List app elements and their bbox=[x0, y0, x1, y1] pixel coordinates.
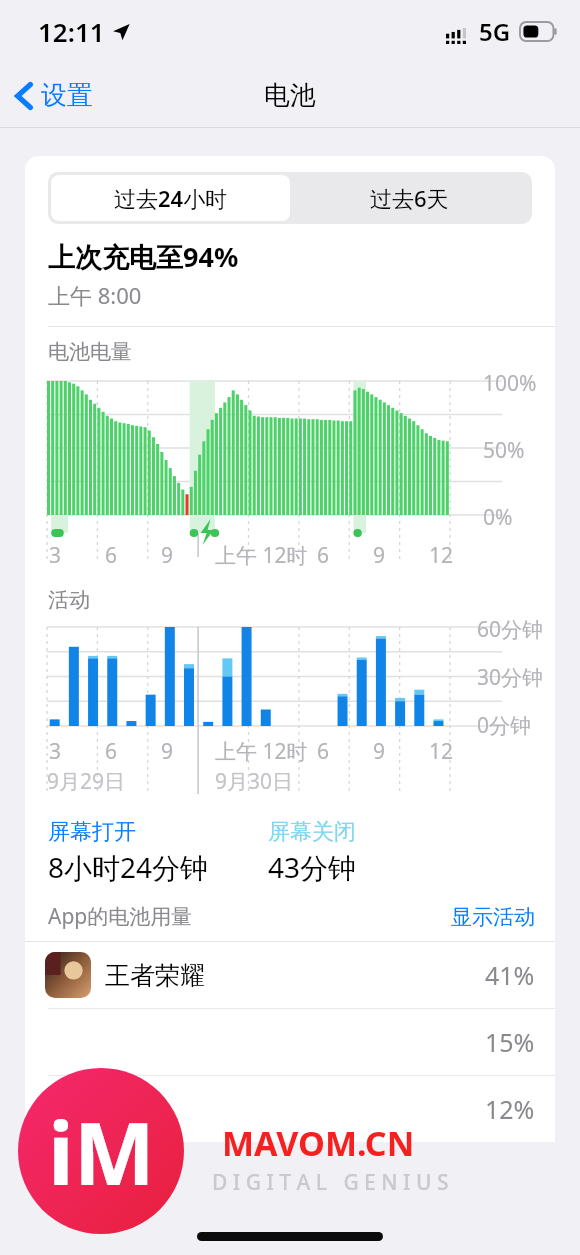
staticText: 6 bbox=[105, 541, 118, 570]
staticText: App的电池用量 bbox=[48, 902, 193, 931]
staticText: 9月30日 bbox=[215, 767, 294, 796]
staticText: MAVOM.CN bbox=[222, 1120, 415, 1166]
staticText: 过去6天 bbox=[370, 183, 449, 213]
staticText: 上次充电至94% bbox=[48, 238, 239, 275]
staticText: 王者荣耀 bbox=[105, 960, 205, 991]
staticText: 屏幕关闭 bbox=[268, 818, 356, 846]
staticText: 上午 12时 bbox=[215, 541, 308, 570]
staticText: 6 bbox=[105, 737, 118, 766]
staticText: 9月29日 bbox=[47, 767, 126, 796]
staticText: 0% bbox=[483, 503, 513, 532]
staticText: 60分钟 bbox=[477, 615, 544, 644]
staticText: 6 bbox=[317, 737, 330, 766]
staticText: iM bbox=[48, 1093, 155, 1210]
button[interactable]: 过去24小时 bbox=[51, 175, 290, 221]
button[interactable]: 12% bbox=[25, 1076, 555, 1142]
staticText: 3 bbox=[49, 737, 62, 766]
staticText: 30分钟 bbox=[477, 663, 544, 692]
staticText: 100% bbox=[483, 369, 537, 398]
button[interactable]: 过去6天 bbox=[290, 175, 529, 221]
button[interactable]: 王者荣耀 bbox=[25, 942, 555, 1008]
staticText: 12 bbox=[429, 541, 454, 570]
button[interactable]: 15% bbox=[25, 1009, 555, 1075]
staticText: 5G bbox=[479, 15, 511, 48]
staticText: 上午 8:00 bbox=[48, 280, 142, 310]
staticText: D I G I T A L G E N I U S bbox=[212, 1168, 449, 1197]
staticText: 上午 12时 bbox=[215, 737, 308, 766]
staticText: 50% bbox=[483, 436, 525, 465]
staticText: 9 bbox=[161, 541, 174, 570]
staticText: 显示活动 bbox=[451, 904, 535, 930]
staticText: 41% bbox=[485, 958, 535, 992]
button[interactable]: 设置 bbox=[0, 73, 103, 118]
staticText: 电池 bbox=[264, 79, 316, 112]
button[interactable]: 显示活动 bbox=[451, 904, 535, 930]
staticText: 8小时24分钟 bbox=[48, 848, 209, 886]
staticText: 6 bbox=[317, 541, 330, 570]
staticText: 3 bbox=[49, 541, 62, 570]
staticText: 0分钟 bbox=[477, 711, 532, 740]
staticText: 43分钟 bbox=[268, 848, 357, 886]
staticText: 12:11 bbox=[38, 14, 105, 49]
staticText: 活动 bbox=[48, 587, 90, 613]
staticText: 9 bbox=[373, 541, 386, 570]
staticText: 12% bbox=[485, 1092, 535, 1126]
staticText: 12 bbox=[429, 737, 454, 766]
staticText: 过去24小时 bbox=[114, 183, 228, 213]
staticText: 9 bbox=[373, 737, 386, 766]
staticText: 电池电量 bbox=[48, 339, 132, 365]
staticText: 15% bbox=[485, 1025, 535, 1059]
staticText: 设置 bbox=[41, 79, 93, 112]
staticText: 9 bbox=[161, 737, 174, 766]
staticText: 屏幕打开 bbox=[48, 818, 136, 846]
